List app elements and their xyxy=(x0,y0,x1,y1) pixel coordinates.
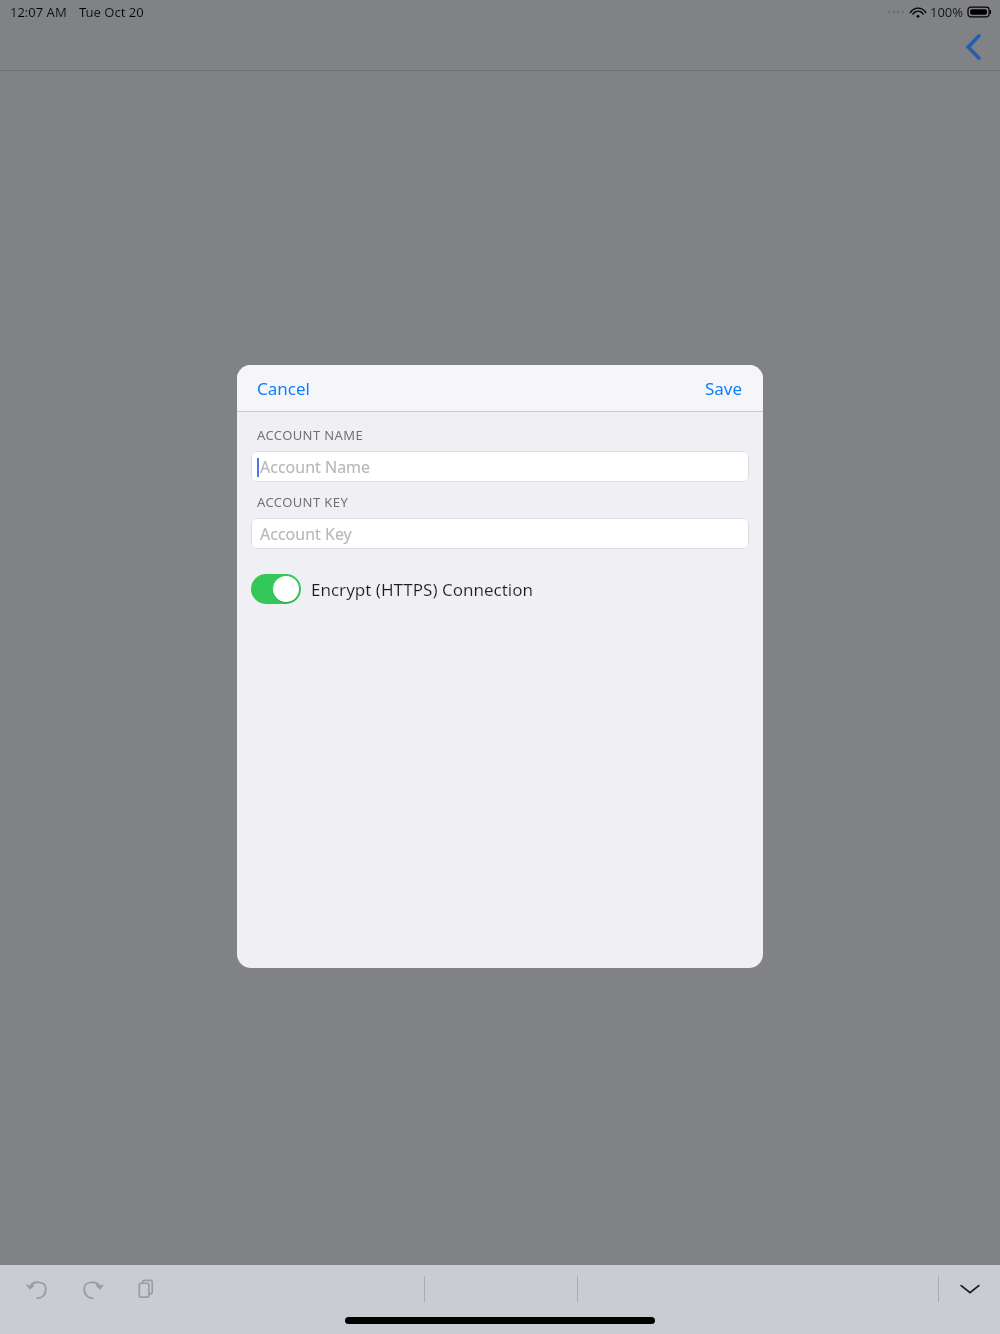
staticText: Save xyxy=(705,377,743,400)
button[interactable]: Encrypt HTTPS Connection toggle xyxy=(251,574,301,604)
button[interactable]: Paste xyxy=(126,1269,166,1309)
button[interactable]: Account Name xyxy=(251,451,749,482)
staticText: ACCOUNT NAME xyxy=(257,426,364,444)
button[interactable]: Save xyxy=(693,371,755,406)
staticText: 12:07 AM xyxy=(10,3,67,21)
button[interactable]: Undo xyxy=(18,1269,58,1309)
staticText: Cancel xyxy=(257,377,310,400)
button[interactable]: Encrypt HTTPS Connection toggle xyxy=(251,574,749,604)
staticText: 100% xyxy=(930,3,964,21)
staticText: Account Name xyxy=(260,456,371,478)
button[interactable]: Back xyxy=(948,21,1000,73)
button[interactable]: Account Key xyxy=(251,518,749,549)
staticText: Tue Oct 20 xyxy=(79,3,144,21)
button[interactable]: Cancel xyxy=(245,371,322,406)
staticText: ACCOUNT KEY xyxy=(257,493,349,511)
button[interactable]: Redo xyxy=(72,1269,112,1309)
staticText: Encrypt (HTTPS) Connection xyxy=(311,578,534,601)
button[interactable]: Hide keyboard xyxy=(948,1267,992,1311)
staticText: Account Key xyxy=(260,523,352,545)
